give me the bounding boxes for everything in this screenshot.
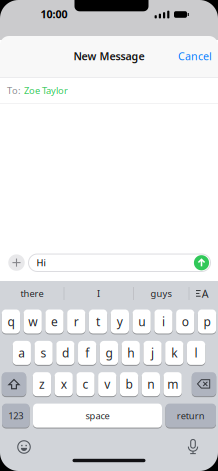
button[interactable]: Cancel (178, 49, 212, 63)
staticText: A (202, 286, 209, 301)
button[interactable]: y (111, 309, 129, 334)
button[interactable] (8, 254, 25, 271)
staticText: u (138, 313, 145, 329)
button[interactable]: k (165, 340, 183, 365)
staticText: d (62, 345, 69, 361)
button[interactable]: 123 (2, 403, 29, 428)
button[interactable]: space (33, 403, 162, 428)
staticText: z (39, 376, 45, 392)
staticText: q (7, 313, 14, 329)
staticText: Zoe Taylor (24, 84, 68, 97)
staticText: s (41, 345, 47, 361)
button[interactable]: i (154, 309, 173, 334)
staticText: r (74, 313, 79, 329)
button[interactable] (2, 372, 26, 397)
staticText: p (203, 313, 210, 329)
button[interactable]: c (76, 372, 95, 397)
button[interactable]: q (2, 309, 20, 334)
button[interactable]: d (56, 340, 74, 365)
button[interactable]: n (142, 372, 160, 397)
button[interactable]: I (68, 282, 128, 304)
button[interactable]: u (132, 309, 151, 334)
staticText: g (105, 345, 112, 361)
button[interactable]: l (187, 340, 205, 365)
button[interactable]: p (198, 309, 216, 334)
staticText: Hi (36, 257, 45, 269)
button[interactable]: m (163, 372, 182, 397)
staticText: 123 (8, 409, 23, 422)
button[interactable]: w (23, 309, 42, 334)
button[interactable]: s (34, 340, 53, 365)
staticText: return (177, 409, 205, 422)
button[interactable]: g (100, 340, 118, 365)
staticText: New Message (73, 49, 144, 63)
button[interactable]: h (122, 340, 140, 365)
staticText: f (85, 345, 89, 361)
button[interactable]: To: (0, 77, 218, 103)
button[interactable]: r (67, 309, 85, 334)
staticText: 10:00 (40, 7, 67, 21)
staticText: l (195, 345, 198, 361)
button[interactable]: o (176, 309, 194, 334)
button[interactable]: t (89, 309, 107, 334)
staticText: k (171, 345, 177, 361)
button[interactable] (14, 437, 34, 457)
staticText: To: (7, 84, 21, 97)
staticText: w (28, 313, 37, 329)
button[interactable]: j (143, 340, 162, 365)
button[interactable] (192, 372, 216, 397)
staticText: y (117, 313, 123, 329)
staticText: Cancel (178, 49, 212, 63)
staticText: j (151, 345, 154, 361)
staticText: o (182, 313, 189, 329)
staticText: e (51, 313, 58, 329)
staticText: i (162, 313, 165, 329)
staticText: space (85, 409, 109, 422)
button[interactable]: A (192, 282, 214, 304)
staticText: v (104, 376, 110, 392)
staticText: c (82, 376, 88, 392)
staticText: I (97, 287, 100, 300)
button[interactable]: Hi (28, 254, 210, 271)
staticText: h (127, 345, 134, 361)
staticText: a (18, 345, 25, 361)
staticText: guys (150, 287, 171, 300)
button[interactable]: b (120, 372, 138, 397)
button[interactable]: z (33, 372, 51, 397)
button[interactable]: e (45, 309, 64, 334)
button[interactable] (183, 437, 203, 457)
button[interactable]: there (2, 282, 62, 304)
staticText: t (96, 313, 100, 329)
button[interactable]: f (78, 340, 96, 365)
button[interactable]: x (54, 372, 73, 397)
button[interactable] (194, 255, 209, 270)
button[interactable]: a (13, 340, 31, 365)
staticText: x (61, 376, 67, 392)
button[interactable]: v (98, 372, 116, 397)
staticText: m (167, 376, 178, 392)
staticText: b (126, 376, 133, 392)
button[interactable]: guys (136, 282, 186, 304)
staticText: there (20, 287, 43, 300)
button[interactable]: return (165, 403, 216, 428)
staticText: n (147, 376, 154, 392)
